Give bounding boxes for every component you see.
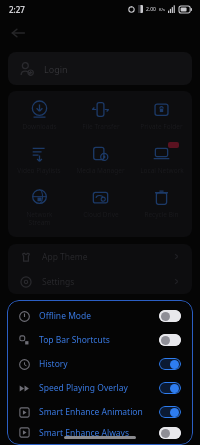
staticText: Offline Mode (39, 310, 159, 322)
button[interactable]: Login (8, 52, 192, 85)
staticText: History (39, 358, 159, 370)
staticText: K/s (159, 7, 165, 12)
button[interactable]: Offline Mode (7, 304, 193, 328)
button[interactable]: Cloud Drive (70, 187, 131, 221)
button[interactable]: File Transfer (70, 99, 131, 133)
staticText: Smart Enhance Animation (39, 406, 159, 418)
staticText: Speed Playing Overlay (39, 382, 159, 394)
button[interactable]: Private Folder (131, 99, 192, 133)
button[interactable]: Network Stream (8, 187, 70, 229)
staticText: App Theme (42, 251, 173, 263)
staticText: 2.00 (146, 6, 156, 13)
button[interactable]: Smart Enhance Animation (7, 400, 193, 424)
button[interactable]: Media Manager (70, 143, 131, 177)
staticText: Top Bar Shortcuts (39, 334, 159, 346)
button[interactable]: Top Bar Shortcuts (7, 328, 193, 352)
staticText: Settings (42, 276, 173, 288)
button[interactable]: Recycle Bin (131, 187, 192, 221)
staticText: Login (44, 63, 68, 75)
button[interactable]: App Theme (8, 244, 192, 269)
button[interactable]: Video Playlists (8, 143, 70, 177)
staticText: 2:27 (9, 4, 25, 15)
button[interactable]: Speed Playing Overlay (7, 376, 193, 400)
button[interactable]: Smart Enhance Always (7, 424, 193, 441)
button[interactable]: History (7, 352, 193, 376)
button[interactable]: Settings (8, 269, 192, 294)
button[interactable]: Downloads (8, 99, 70, 133)
staticText: Smart Enhance Always (39, 427, 159, 439)
button[interactable]: Back (4, 19, 32, 47)
button[interactable]: Local Network (131, 143, 192, 177)
staticText: Downloads (22, 122, 57, 131)
